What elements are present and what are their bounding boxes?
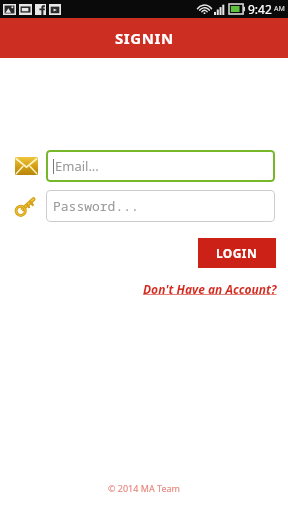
button[interactable]: Password... [46, 190, 275, 222]
staticText: 9:42 [248, 1, 272, 17]
button[interactable]: LOGIN [198, 238, 276, 268]
staticText: SIGNIN [115, 28, 174, 48]
button[interactable]: Email... [46, 150, 275, 182]
staticText: LOGIN [216, 245, 258, 261]
staticText: Password... [53, 197, 139, 215]
staticText: Don't Have an Account? [143, 281, 277, 297]
staticText: Email... [55, 157, 99, 175]
staticText: AM [274, 4, 285, 14]
staticText: © 2014 MA Team [108, 482, 180, 494]
button[interactable]: Don't Have an Account? [143, 281, 277, 297]
